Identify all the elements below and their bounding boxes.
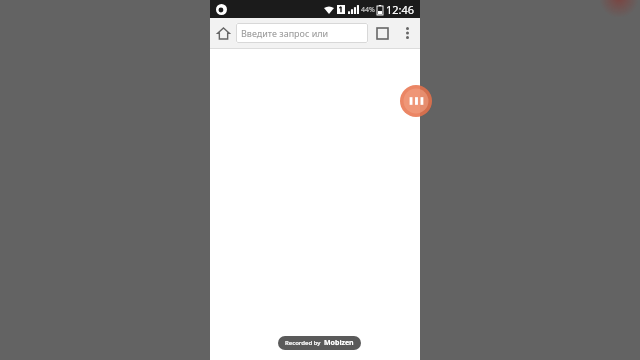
- staticText: 44%: [361, 5, 375, 15]
- staticText: 12:46: [386, 2, 415, 17]
- staticText: Mobizen: [324, 338, 354, 348]
- staticText: Введите запрос или: [241, 27, 329, 39]
- button[interactable]: More options: [396, 22, 418, 44]
- button[interactable]: Home: [210, 20, 236, 46]
- staticText: Recorded by: [285, 339, 321, 347]
- button[interactable]: Tabs: [368, 19, 396, 47]
- button[interactable]: Введите запрос или: [236, 23, 368, 43]
